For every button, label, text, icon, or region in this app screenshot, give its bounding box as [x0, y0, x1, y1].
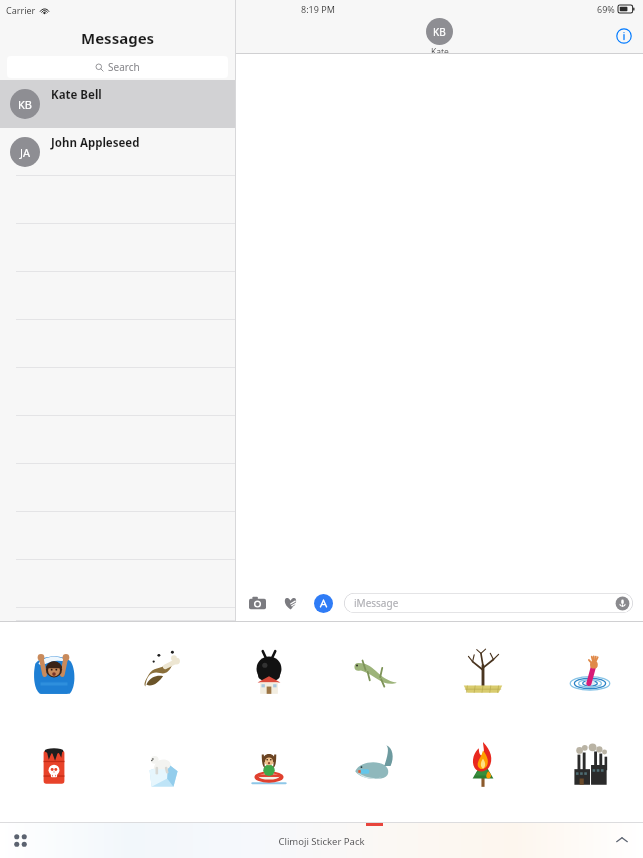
staticText: KB [433, 25, 446, 39]
staticText: Climoji Sticker Pack [278, 835, 365, 848]
button[interactable]: Expand [611, 829, 633, 851]
staticText: Carrier [6, 4, 36, 16]
button[interactable]: Details [615, 27, 633, 45]
button[interactable]: Search [7, 56, 228, 78]
button[interactable]: Sticker [429, 737, 536, 793]
button[interactable]: Sticker [322, 644, 429, 700]
button[interactable]: App drawer [8, 828, 32, 852]
button[interactable]: Camera [246, 592, 268, 614]
staticText: Kate [431, 46, 449, 53]
button[interactable]: Sticker [215, 644, 322, 700]
button[interactable]: Sticker [536, 737, 643, 793]
button[interactable]: Sticker [0, 737, 108, 793]
button[interactable]: Sticker [322, 737, 429, 793]
staticText: KB [18, 97, 32, 112]
staticText: Search [108, 60, 140, 74]
button[interactable]: App Store [312, 592, 334, 614]
button[interactable]: Digital Touch [279, 592, 301, 614]
button[interactable]: Sticker [215, 737, 322, 793]
button[interactable]: iMessage [344, 593, 633, 613]
button[interactable]: KB [0, 80, 235, 128]
button[interactable]: Sticker [0, 644, 108, 700]
button[interactable]: Sticker [108, 737, 215, 793]
button[interactable]: JA [0, 128, 235, 176]
button[interactable]: KB [426, 18, 453, 45]
staticText: Messages [81, 28, 155, 48]
button[interactable]: Sticker [429, 644, 536, 700]
staticText: John Appleseed [51, 135, 140, 151]
button[interactable]: Sticker [536, 644, 643, 700]
staticText: iMessage [354, 596, 399, 610]
staticText: 69% [597, 3, 615, 15]
button[interactable]: Sticker [108, 644, 215, 700]
staticText: JA [20, 145, 31, 160]
staticText: 8:19 PM [301, 3, 335, 15]
staticText: Kate Bell [51, 87, 102, 103]
button[interactable]: Dictate [615, 596, 630, 611]
